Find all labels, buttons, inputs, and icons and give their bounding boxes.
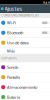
button[interactable]: Bluetooth: [0, 28, 50, 37]
button[interactable]: Más: [0, 48, 50, 54]
button[interactable]: Batería: [0, 92, 50, 100]
staticText: Uso de datos: [7, 40, 29, 45]
staticText: CONEXIONES INALÁMBRICAS: [1, 14, 38, 17]
button[interactable]: Sonido: [0, 62, 50, 72]
staticText: Batería: [7, 94, 20, 100]
staticText: Almacenamiento: [7, 84, 37, 90]
button[interactable]: Uso de datos: [0, 38, 50, 47]
staticText: Pantalla: [7, 74, 20, 80]
button[interactable]: Wi-Fi: [0, 18, 50, 28]
staticText: Ajustes: [4, 5, 22, 12]
staticText: ▮ ▲ ▮: [43, 1, 49, 4]
staticText: Bluetooth: [7, 30, 23, 35]
staticText: Sonido: [7, 65, 18, 70]
staticText: DISPOSITIVO: [1, 56, 17, 60]
button[interactable]: Pantalla: [0, 72, 50, 82]
staticText: Más: [7, 48, 15, 53]
button[interactable]: Almacenamiento: [0, 82, 50, 92]
staticText: Wi-Fi: [7, 20, 16, 25]
